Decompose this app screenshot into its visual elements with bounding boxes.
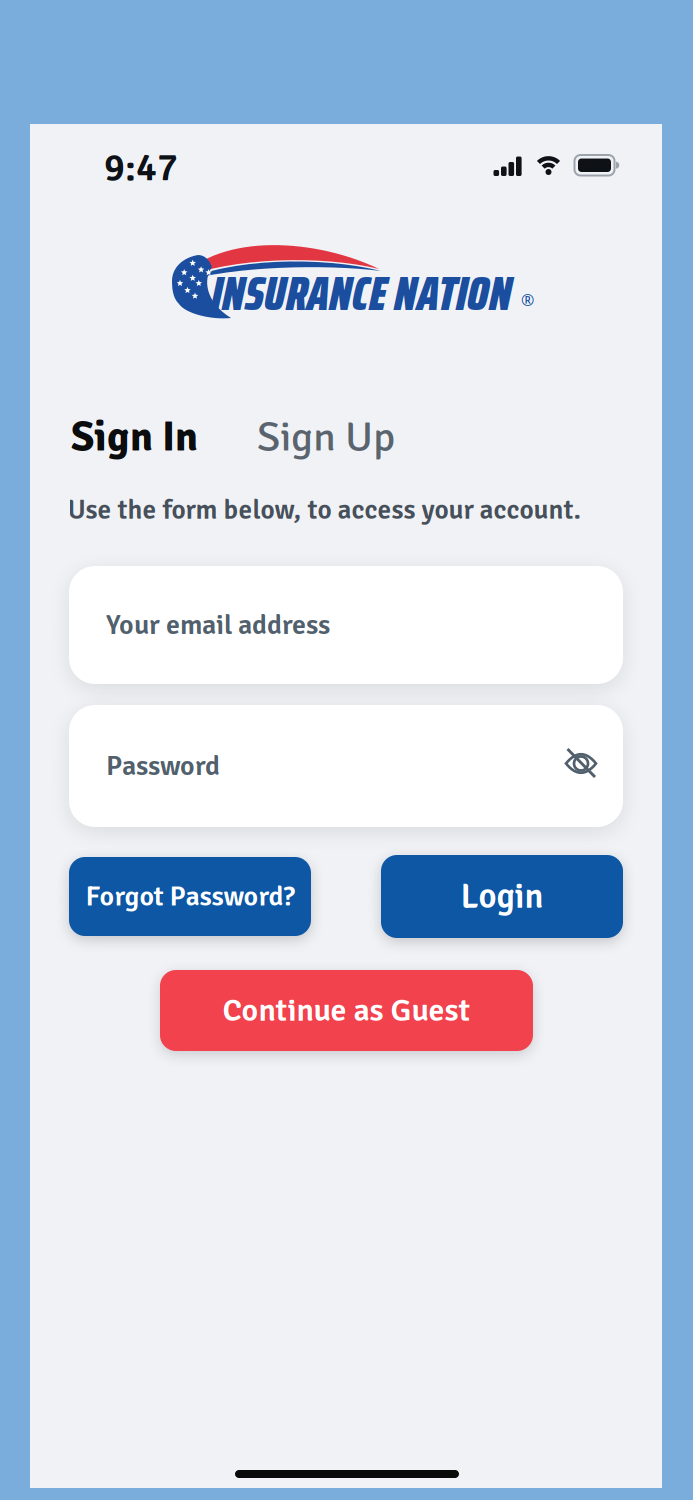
staticText: Continue as Guest bbox=[222, 991, 470, 1030]
staticText: Password bbox=[106, 749, 220, 783]
button[interactable]: Forgot Password? bbox=[69, 857, 311, 936]
button[interactable]: Show password bbox=[557, 741, 605, 786]
staticText: ® bbox=[521, 289, 534, 311]
button[interactable]: Your email address bbox=[69, 566, 623, 684]
staticText: Sign In bbox=[71, 411, 198, 463]
staticText: Sign Up bbox=[257, 411, 395, 463]
staticText: Login bbox=[460, 875, 543, 918]
staticText: Forgot Password? bbox=[85, 879, 294, 914]
staticText: 9:47 bbox=[104, 144, 178, 192]
staticText: Use the form below, to access your accou… bbox=[67, 493, 581, 527]
staticText: INSURANCE NATION bbox=[211, 255, 512, 331]
staticText: Your email address bbox=[106, 608, 330, 642]
button[interactable]: Login bbox=[381, 855, 623, 938]
button[interactable]: Sign In bbox=[71, 411, 198, 463]
button[interactable]: Continue as Guest bbox=[160, 970, 533, 1051]
button[interactable]: Password bbox=[69, 705, 623, 827]
button[interactable]: Sign Up bbox=[257, 411, 395, 463]
